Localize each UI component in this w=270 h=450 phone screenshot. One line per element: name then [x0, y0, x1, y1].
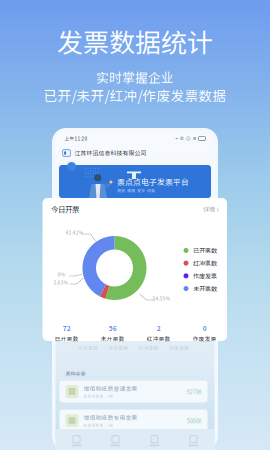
staticText: 高效 便捷 安全 可靠 — [117, 187, 155, 193]
staticText: 72 — [63, 323, 71, 333]
staticText: 发票数据统计 — [57, 22, 213, 60]
button[interactable]: 56 — [90, 320, 136, 346]
staticText: 已开票数 — [78, 345, 98, 351]
staticText: 增值税纸质普通发票 — [83, 384, 137, 392]
staticText: 红冲票数 — [139, 345, 159, 351]
staticText: ≋ — [193, 136, 197, 141]
staticText: 已开票数 — [193, 246, 217, 255]
staticText: 56 — [109, 323, 117, 333]
staticText: 作废发票 — [193, 271, 217, 280]
button[interactable]: 详情 — [203, 202, 218, 216]
staticText: 上午11:20 — [64, 135, 87, 142]
staticText: 0 — [203, 323, 207, 333]
staticText: ◎ — [186, 135, 191, 142]
staticText: 增值税纸质专用发票 — [83, 413, 137, 421]
staticText: 作废发票 — [193, 334, 217, 343]
button[interactable]: 增值税纸质专用发票 — [59, 409, 207, 431]
button[interactable]: Tab — [57, 431, 96, 450]
staticText: ⌁ — [175, 136, 178, 141]
staticText: 实时掌握企业 — [96, 68, 174, 86]
button[interactable]: Tab — [96, 431, 135, 450]
staticText: 586张 — [186, 416, 201, 425]
staticText: 未开票数 — [101, 334, 125, 343]
staticText: 作废发票 — [169, 345, 189, 351]
staticText: 发票领置量：0张 — [83, 422, 113, 428]
staticText: › — [216, 203, 218, 215]
staticText: 未开票数 — [193, 284, 217, 293]
staticText: 红冲票数 — [193, 259, 217, 268]
staticText: 票点点电子发票平台 — [117, 176, 189, 187]
staticText: 发票领置量：0张 — [83, 393, 113, 399]
button[interactable]: Tab — [174, 431, 213, 450]
button[interactable]: 72 — [44, 320, 90, 346]
staticText: 0% — [57, 271, 64, 278]
staticText: 2 — [157, 323, 161, 333]
button[interactable]: 2 — [136, 320, 182, 346]
button[interactable]: Tab — [135, 431, 174, 450]
staticText: 42.42% — [65, 229, 82, 236]
staticText: ✆ — [180, 136, 184, 141]
staticText: 54.55% — [152, 295, 169, 302]
staticText: 江苏环迅信息科技有限公司 — [74, 149, 146, 157]
staticText: 927张 — [186, 387, 201, 396]
button[interactable]: 增值税纸质普通发票 — [59, 380, 207, 402]
staticText: 已开票数 — [55, 334, 79, 343]
staticText: 票种余量 — [65, 370, 85, 377]
staticText: 红冲票数 — [147, 334, 171, 343]
staticText: 未开票数 — [108, 345, 128, 351]
staticText: 3.03% — [53, 279, 67, 286]
staticText: 详情 — [203, 205, 215, 213]
button[interactable]: 0 — [182, 320, 228, 346]
staticText: 今日开票 — [51, 204, 79, 214]
staticText: 已开/未开/红冲/作废发票数据 — [43, 85, 226, 105]
